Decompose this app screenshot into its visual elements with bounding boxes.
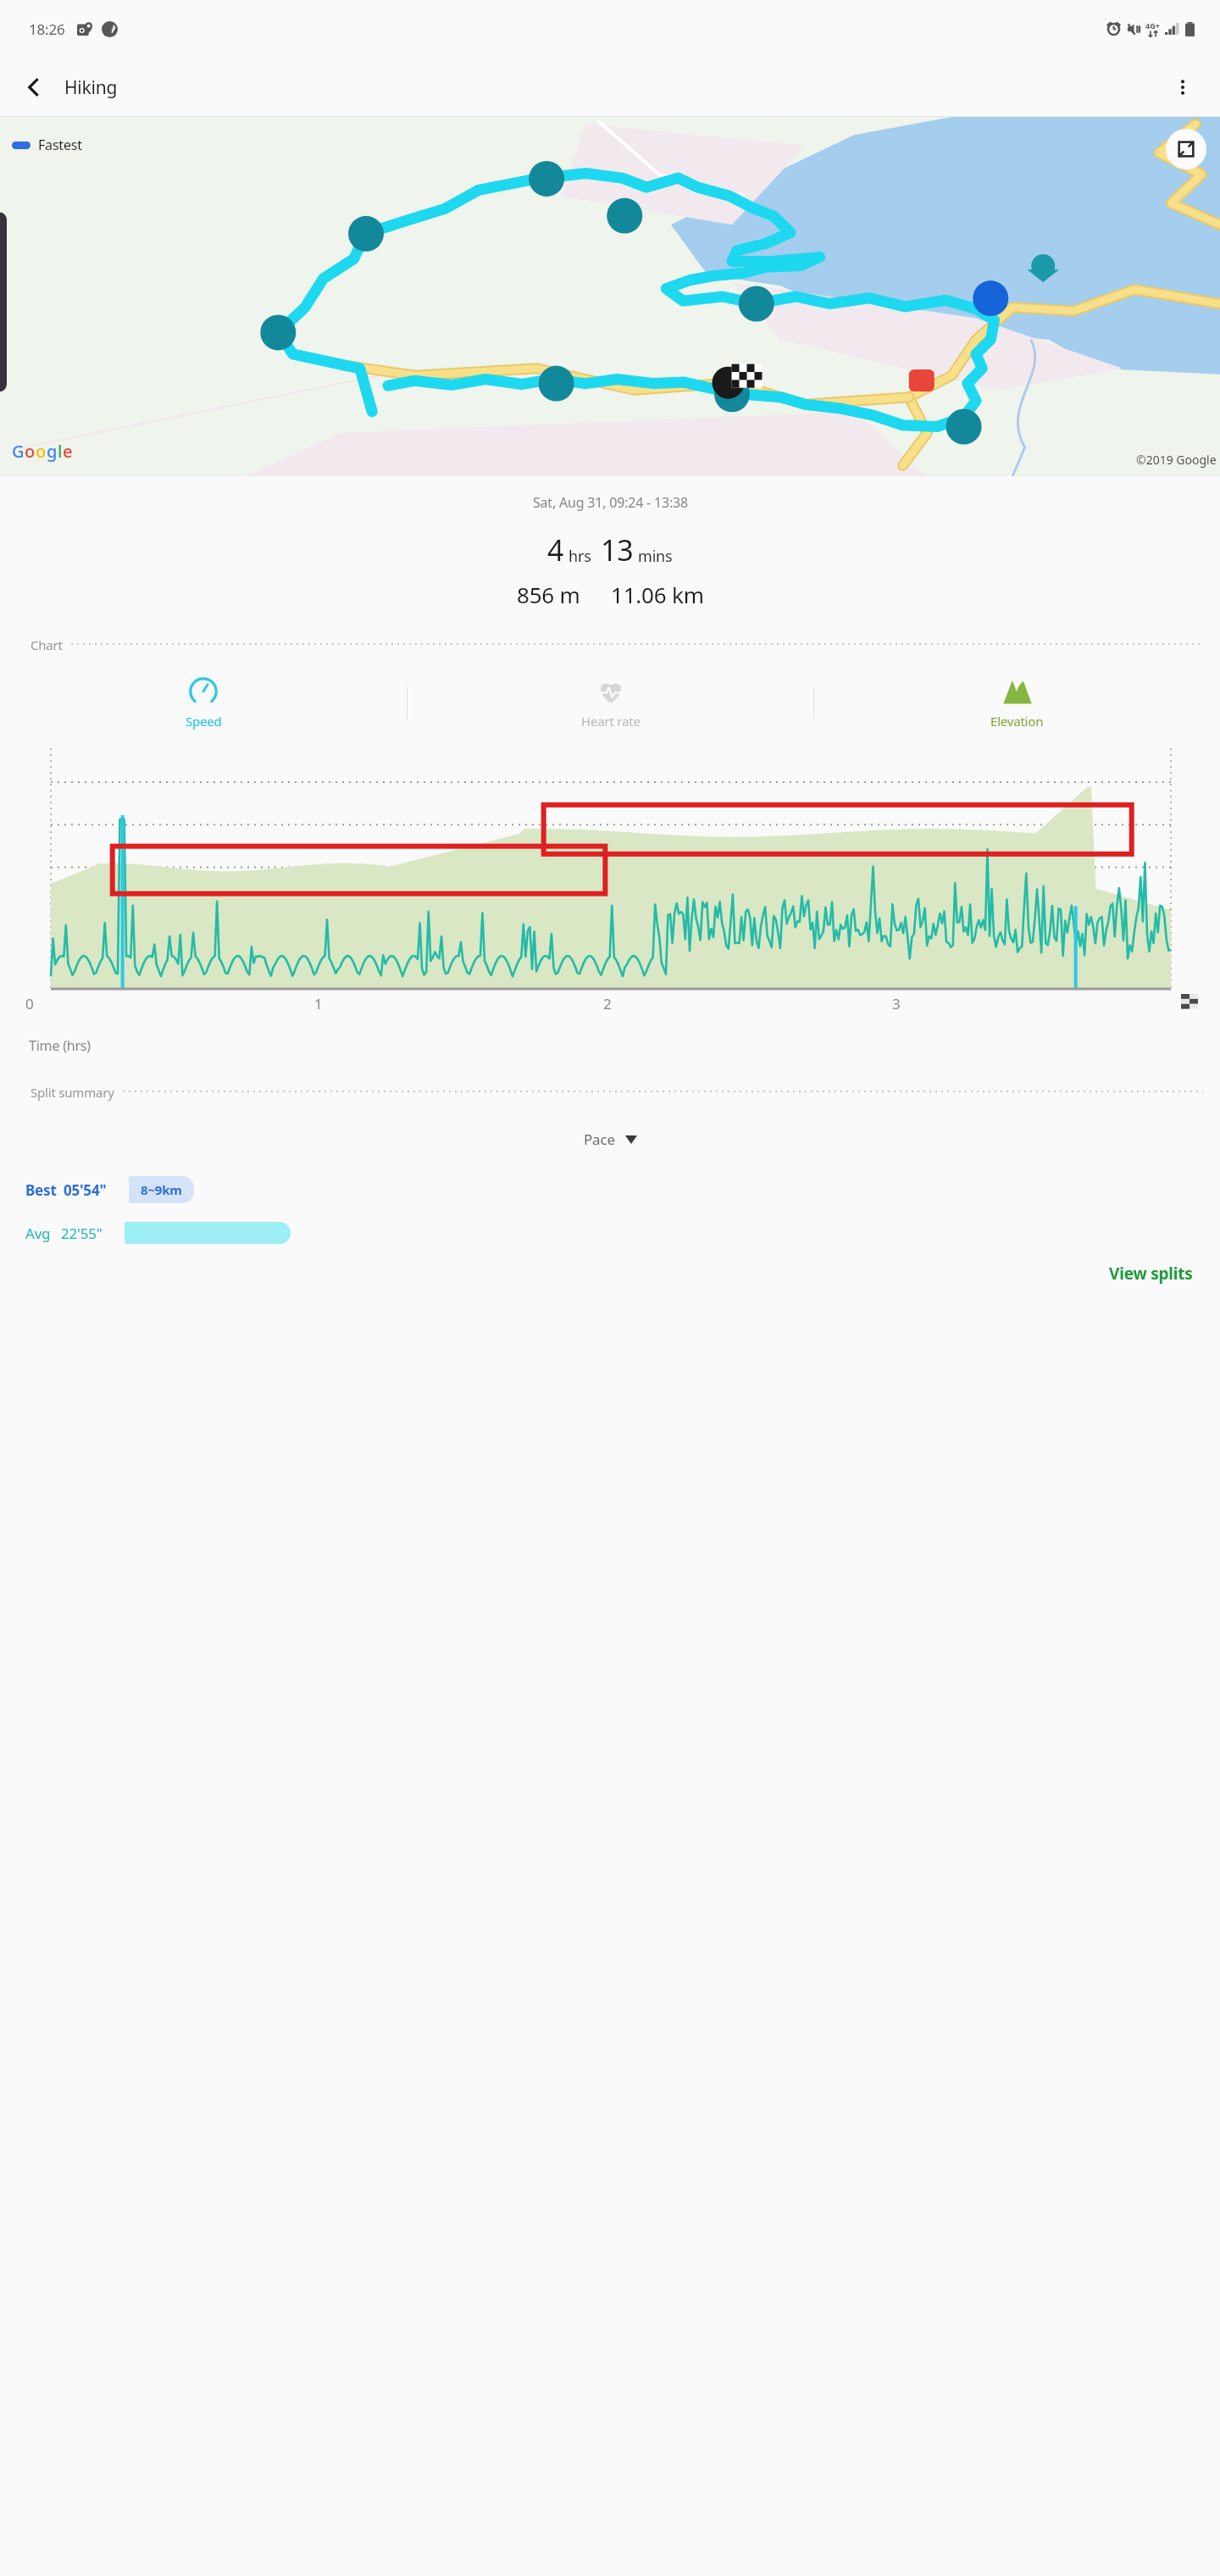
staticText: 4G+: [1145, 20, 1160, 31]
staticText: Sat, Aug 31, 09:24 - 13:38: [533, 493, 688, 512]
staticText: o: [25, 440, 36, 463]
staticText: Time (hrs): [29, 1036, 91, 1055]
staticText: hrs: [568, 546, 591, 567]
staticText: o: [36, 440, 47, 463]
button[interactable]: Elevation: [814, 670, 1220, 735]
staticText: Avg: [25, 1224, 51, 1243]
staticText: 856 m: [517, 580, 580, 609]
staticText: Chart: [30, 636, 63, 653]
staticText: g: [47, 440, 58, 463]
staticText: e: [63, 440, 73, 463]
staticText: Fastest: [38, 136, 82, 154]
staticText: 0: [25, 994, 34, 1013]
staticText: 18:26: [29, 19, 65, 39]
button[interactable]: Best: [0, 1176, 1220, 1203]
staticText: 05'54": [64, 1180, 107, 1200]
button[interactable]: Pace: [570, 1123, 651, 1156]
staticText: Elevation: [990, 713, 1044, 730]
staticText: Heart rate: [581, 713, 640, 730]
staticText: Pace: [584, 1130, 615, 1149]
staticText: 22'55": [61, 1224, 103, 1243]
staticText: 13: [601, 530, 634, 569]
button[interactable]: More options: [1161, 65, 1205, 109]
staticText: Speed: [186, 713, 222, 730]
staticText: Split summary: [30, 1084, 114, 1101]
staticText: 8~9km: [141, 1181, 182, 1198]
staticText: 11.06 km: [611, 580, 704, 609]
staticText: 2: [603, 994, 612, 1013]
staticText: ©2019 Google: [1136, 452, 1217, 468]
button[interactable]: Expand map: [1166, 129, 1206, 169]
button[interactable]: View splits: [1101, 1256, 1201, 1291]
staticText: G: [12, 440, 25, 463]
button[interactable]: Speed: [0, 670, 407, 735]
staticText: l: [58, 440, 63, 463]
staticText: 4: [547, 530, 564, 569]
button[interactable]: Avg: [0, 1222, 1220, 1244]
staticText: View splits: [1109, 1263, 1193, 1285]
staticText: mins: [638, 546, 673, 567]
staticText: Hiking: [64, 75, 118, 100]
button[interactable]: Back: [12, 65, 56, 109]
staticText: 3: [892, 994, 901, 1013]
staticText: 1: [314, 994, 323, 1013]
staticText: Best: [25, 1180, 57, 1200]
button[interactable]: Heart rate: [408, 670, 813, 735]
